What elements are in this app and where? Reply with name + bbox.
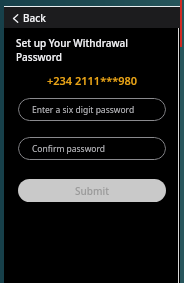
button[interactable]: Submit — [18, 179, 166, 202]
staticText: Back — [23, 11, 46, 25]
button[interactable]: Back — [10, 9, 48, 27]
staticText: +234 2111***980 — [16, 73, 168, 88]
staticText: Confirm password — [32, 143, 106, 155]
staticText: Set up Your Withdrawal Password — [16, 36, 128, 64]
staticText: Submit — [75, 184, 109, 198]
button[interactable]: Confirm password — [18, 137, 166, 160]
staticText: Enter a six digit password — [32, 104, 135, 116]
button[interactable]: Enter a six digit password — [18, 98, 166, 121]
